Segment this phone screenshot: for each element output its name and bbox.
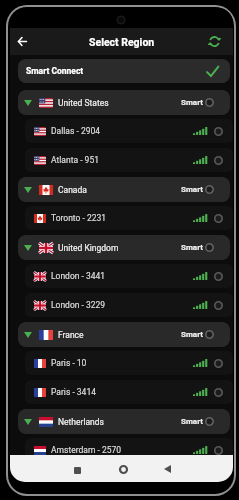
staticText: Smart — [181, 98, 203, 107]
button[interactable]: Amsterdam - 2570 — [25, 438, 233, 462]
staticText: Canada — [58, 185, 87, 195]
button[interactable]: Atlanta - 951 — [25, 148, 233, 172]
staticText: Smart — [181, 417, 203, 426]
staticText: Paris - 10 — [51, 358, 87, 368]
staticText: Paris - 3414 — [51, 387, 96, 397]
button[interactable]: United States — [18, 90, 230, 115]
staticText: United Kingdom — [58, 243, 119, 253]
staticText: Atlanta - 951 — [51, 155, 99, 165]
staticText: Amsterdam - 2570 — [51, 445, 122, 455]
button[interactable]: Smart Connect — [18, 59, 230, 83]
button[interactable] — [17, 36, 28, 47]
button[interactable]: Dallas - 2904 — [25, 119, 233, 143]
button[interactable]: London - 3229 — [25, 293, 233, 317]
staticText: Netherlands — [58, 417, 104, 427]
button[interactable]: Paris - 10 — [25, 351, 233, 375]
button[interactable]: Paris - 3414 — [25, 380, 233, 404]
button[interactable] — [70, 464, 84, 476]
button[interactable] — [208, 35, 221, 48]
staticText: Select Region — [89, 36, 155, 48]
button[interactable]: United Kingdom — [18, 235, 230, 260]
staticText: Toronto - 2231 — [51, 213, 107, 223]
button[interactable]: London - 3441 — [25, 264, 233, 288]
staticText: London - 3229 — [51, 300, 106, 310]
staticText: Smart — [181, 185, 203, 194]
button[interactable]: Netherlands — [18, 409, 230, 434]
button[interactable]: France — [18, 322, 230, 347]
button[interactable]: Toronto - 2231 — [25, 206, 233, 230]
staticText: United States — [58, 98, 109, 108]
button[interactable] — [160, 463, 174, 475]
button[interactable] — [116, 462, 130, 476]
staticText: London - 3441 — [51, 271, 106, 281]
staticText: France — [58, 330, 84, 340]
staticText: Smart — [181, 243, 203, 252]
button[interactable]: Canada — [18, 177, 230, 202]
staticText: Smart — [181, 330, 203, 339]
staticText: Smart Connect — [26, 66, 84, 76]
staticText: Dallas - 2904 — [51, 126, 101, 136]
